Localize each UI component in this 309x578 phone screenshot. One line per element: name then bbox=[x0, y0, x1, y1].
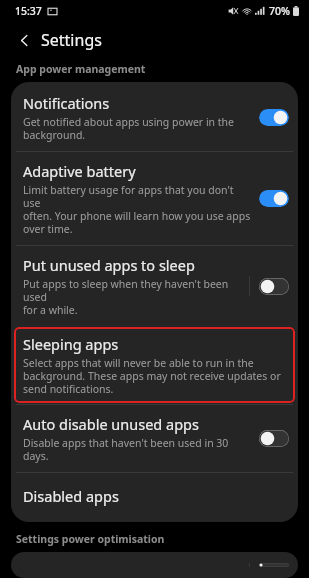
staticText: 70% bbox=[269, 4, 290, 18]
staticText: Notifications bbox=[23, 93, 110, 113]
button[interactable]: Auto disable unused apps bbox=[11, 405, 298, 472]
staticText: Select apps that will never be able to r… bbox=[23, 356, 281, 396]
button[interactable]: Adaptive battery bbox=[11, 152, 298, 245]
button[interactable]: Optimise settings bbox=[259, 563, 289, 567]
button[interactable]: Notifications bbox=[259, 109, 289, 126]
staticText: Disabled apps bbox=[23, 486, 119, 506]
staticText: Auto disable unused apps bbox=[23, 414, 199, 434]
button[interactable]: Put unused apps to sleep bbox=[11, 246, 298, 326]
staticText: 15:37 bbox=[15, 4, 42, 18]
button[interactable]: Notifications bbox=[11, 82, 298, 151]
button[interactable]: Auto disable unused apps bbox=[259, 430, 289, 447]
staticText: Settings bbox=[41, 29, 102, 51]
button[interactable]: Disabled apps bbox=[11, 473, 298, 522]
button[interactable]: Optimise settings bbox=[11, 552, 298, 578]
staticText: Disable apps that haven't been used in 3… bbox=[23, 436, 251, 463]
staticText: Sleeping apps bbox=[23, 334, 119, 354]
staticText: Put unused apps to sleep bbox=[23, 255, 195, 275]
staticText: App power management bbox=[16, 62, 146, 76]
staticText: Limit battery usage for apps that you do… bbox=[23, 183, 251, 236]
staticText: Settings power optimisation bbox=[16, 532, 165, 546]
staticText: Put apps to sleep when they haven't been… bbox=[23, 277, 249, 317]
button[interactable]: Back bbox=[11, 27, 37, 53]
staticText: Get notified about apps using power in t… bbox=[23, 115, 235, 142]
button[interactable]: Sleeping apps bbox=[14, 327, 295, 403]
button[interactable]: Put unused apps to sleep bbox=[259, 278, 289, 295]
staticText: Adaptive battery bbox=[23, 161, 136, 181]
button[interactable]: Adaptive battery bbox=[259, 190, 289, 207]
